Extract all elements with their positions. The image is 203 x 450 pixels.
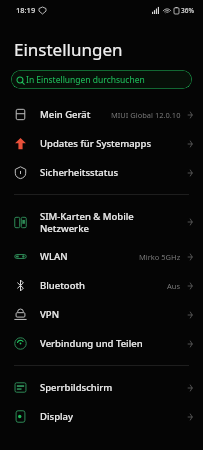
other: Verbindung und Teilen xyxy=(14,337,27,350)
other: Mein Gerät xyxy=(14,108,27,121)
other: WLAN xyxy=(14,250,27,263)
staticText: Bluetooth xyxy=(40,279,86,292)
other: Bluetooth xyxy=(14,279,27,292)
other: Display xyxy=(14,410,27,423)
button[interactable]: Sperrbildschirm xyxy=(0,373,203,402)
staticText: 36% xyxy=(181,6,194,15)
other: Sicherheitsstatus xyxy=(14,166,27,179)
staticText: Verbindung und Teilen xyxy=(40,337,143,350)
other: SIM-Karten xyxy=(14,216,27,229)
staticText: Sicherheitsstatus xyxy=(40,166,119,179)
other: VPN xyxy=(14,308,27,321)
staticText: MIUI Global 12.0.10 xyxy=(111,110,181,120)
other: Sperrbildschirm xyxy=(14,381,27,394)
staticText: VPN xyxy=(40,308,60,321)
staticText: 18:19 xyxy=(16,5,36,15)
button[interactable]: Display xyxy=(0,402,203,431)
staticText: SIM-Karten & Mobile Netzwerke xyxy=(40,210,134,235)
button[interactable]: Verbindung und Teilen xyxy=(0,329,203,358)
staticText: Einstellungen xyxy=(14,38,123,61)
staticText: Display xyxy=(40,410,74,423)
staticText: Mirko 5GHz xyxy=(139,252,181,262)
button[interactable]: Updates xyxy=(0,129,203,158)
staticText: Updates für Systemapps xyxy=(40,137,152,150)
button[interactable]: WLAN xyxy=(0,242,203,271)
button[interactable]: SIM-Karten xyxy=(0,202,203,242)
button[interactable]: In Einstellungen durchsuchen xyxy=(11,70,192,89)
button[interactable]: VPN xyxy=(0,300,203,329)
button[interactable]: Sicherheitsstatus xyxy=(0,158,203,187)
staticText: Mein Gerät xyxy=(40,108,91,121)
staticText: WLAN xyxy=(40,250,68,263)
button[interactable]: Bluetooth xyxy=(0,271,203,300)
button[interactable]: Mein Gerät xyxy=(0,100,203,129)
other: Updates xyxy=(14,137,27,150)
staticText: Sperrbildschirm xyxy=(40,381,113,394)
staticText: In Einstellungen durchsuchen xyxy=(26,74,145,86)
staticText: Aus xyxy=(167,281,181,291)
